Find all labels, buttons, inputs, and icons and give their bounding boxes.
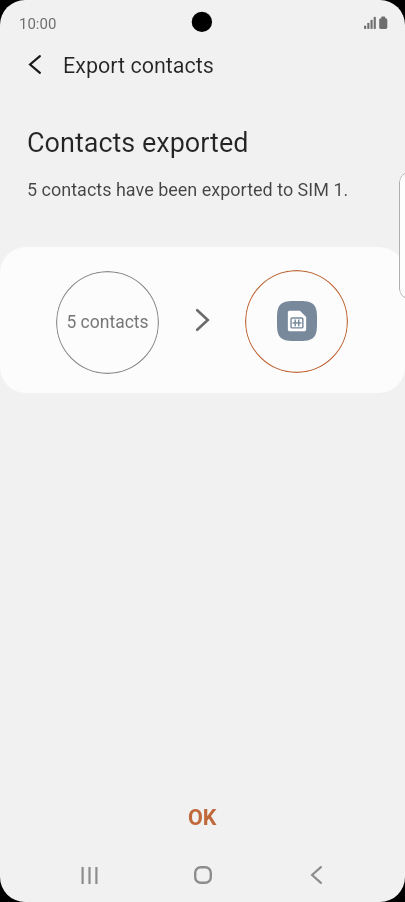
staticText: OK — [188, 805, 217, 830]
button[interactable]: SIM 1 — [245, 270, 348, 373]
button[interactable]: Recents — [62, 851, 116, 899]
button[interactable]: 5 contacts — [56, 271, 159, 374]
staticText: 5 contacts have been exported to SIM 1. — [27, 179, 349, 200]
button[interactable]: Navigate up — [11, 42, 59, 90]
staticText: 10:00 — [19, 15, 57, 33]
button[interactable]: Home — [176, 851, 230, 899]
staticText: 5 contacts — [66, 312, 149, 333]
staticText: Export contacts — [63, 53, 214, 78]
button[interactable]: OK — [0, 795, 405, 839]
button[interactable]: Back — [289, 851, 343, 899]
staticText: Contacts exported — [27, 127, 249, 159]
